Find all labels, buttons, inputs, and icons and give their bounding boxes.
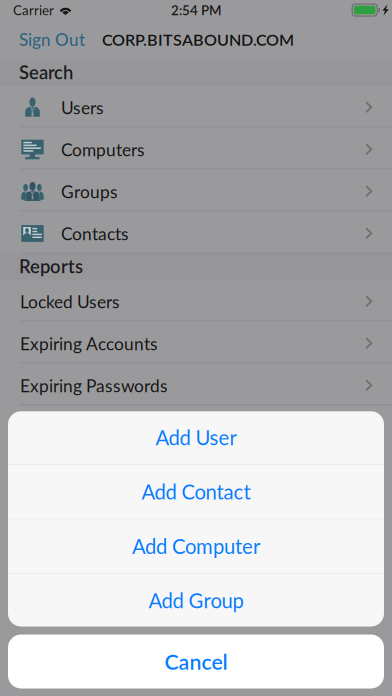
staticText: Users [61, 97, 104, 118]
button[interactable]: Users [0, 85, 392, 127]
button[interactable]: Groups [0, 169, 392, 211]
button[interactable]: Contacts [0, 211, 392, 253]
staticText: Add User [155, 425, 236, 449]
button[interactable]: Add User [8, 410, 384, 464]
button[interactable]: Locked Users [0, 279, 392, 321]
staticText: Groups [61, 181, 118, 202]
staticText: Add Computer [132, 534, 260, 558]
staticText: Search [19, 61, 73, 83]
button[interactable]: Add Contact [8, 465, 384, 519]
staticText: Reports [19, 255, 83, 277]
staticText: Computers [61, 139, 145, 160]
button[interactable]: Add Computer [8, 519, 384, 573]
staticText: Add Contact [141, 479, 250, 504]
staticText: Expiring Accounts [20, 333, 158, 354]
button[interactable]: Cancel [8, 634, 384, 688]
staticText: Carrier [13, 2, 54, 18]
button[interactable]: Add Group [8, 574, 384, 627]
staticText: Add Group [148, 588, 243, 613]
button[interactable]: Computers [0, 127, 392, 169]
staticText: Cancel [164, 649, 227, 674]
button[interactable]: Expiring Accounts [0, 321, 392, 363]
staticText: Expiring Passwords [20, 375, 168, 396]
staticText: Contacts [61, 223, 129, 244]
staticText: CORP.BITSABOUND.COM [102, 30, 294, 49]
button[interactable]: Sign Out [0, 20, 102, 59]
staticText: Locked Users [20, 291, 120, 312]
button[interactable]: Expiring Passwords [0, 363, 392, 405]
staticText: 2:54 PM [171, 2, 221, 18]
staticText: Sign Out [19, 29, 85, 50]
